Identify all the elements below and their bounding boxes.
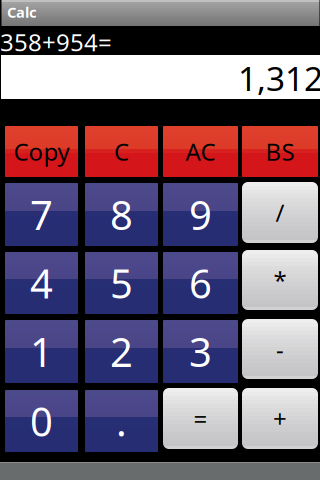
button[interactable]: AC — [163, 126, 238, 177]
button[interactable]: * — [242, 250, 318, 310]
button[interactable]: 1 — [5, 320, 78, 383]
button[interactable]: + — [242, 388, 318, 449]
button[interactable]: / — [242, 182, 318, 243]
button[interactable]: 8 — [85, 183, 158, 246]
staticText: 8 — [110, 188, 133, 241]
button[interactable]: 5 — [85, 252, 158, 314]
button[interactable]: C — [85, 126, 158, 177]
button[interactable]: 9 — [163, 183, 238, 246]
staticText: / — [275, 197, 284, 228]
button[interactable]: Copy — [5, 126, 78, 177]
staticText: 4 — [30, 256, 53, 309]
staticText: 7 — [30, 188, 53, 241]
staticText: 1,312 — [238, 56, 320, 100]
button[interactable]: 3 — [163, 320, 238, 383]
staticText: BS — [265, 136, 294, 167]
button[interactable]: 0 — [5, 390, 78, 452]
staticText: - — [276, 333, 284, 365]
staticText: Calc — [7, 2, 37, 22]
staticText: . — [116, 394, 127, 447]
staticText: C — [114, 136, 129, 167]
button[interactable]: 6 — [163, 252, 238, 314]
staticText: 9 — [189, 188, 212, 241]
staticText: 6 — [189, 256, 212, 309]
staticText: 5 — [110, 256, 133, 309]
staticText: * — [273, 264, 286, 296]
button[interactable]: 2 — [85, 320, 158, 383]
button[interactable]: 7 — [5, 183, 78, 246]
staticText: + — [273, 403, 287, 434]
button[interactable]: . — [85, 390, 158, 452]
staticText: AC — [185, 136, 215, 167]
staticText: 0 — [30, 394, 53, 447]
staticText: 358+954= — [0, 26, 112, 58]
button[interactable]: BS — [242, 126, 318, 177]
staticText: 2 — [110, 325, 133, 378]
button[interactable]: 4 — [5, 252, 78, 314]
staticText: 1 — [30, 325, 53, 378]
staticText: = — [193, 403, 207, 434]
button[interactable]: - — [242, 319, 318, 379]
staticText: 3 — [189, 325, 212, 378]
staticText: Copy — [13, 136, 69, 167]
button[interactable]: = — [163, 388, 238, 449]
